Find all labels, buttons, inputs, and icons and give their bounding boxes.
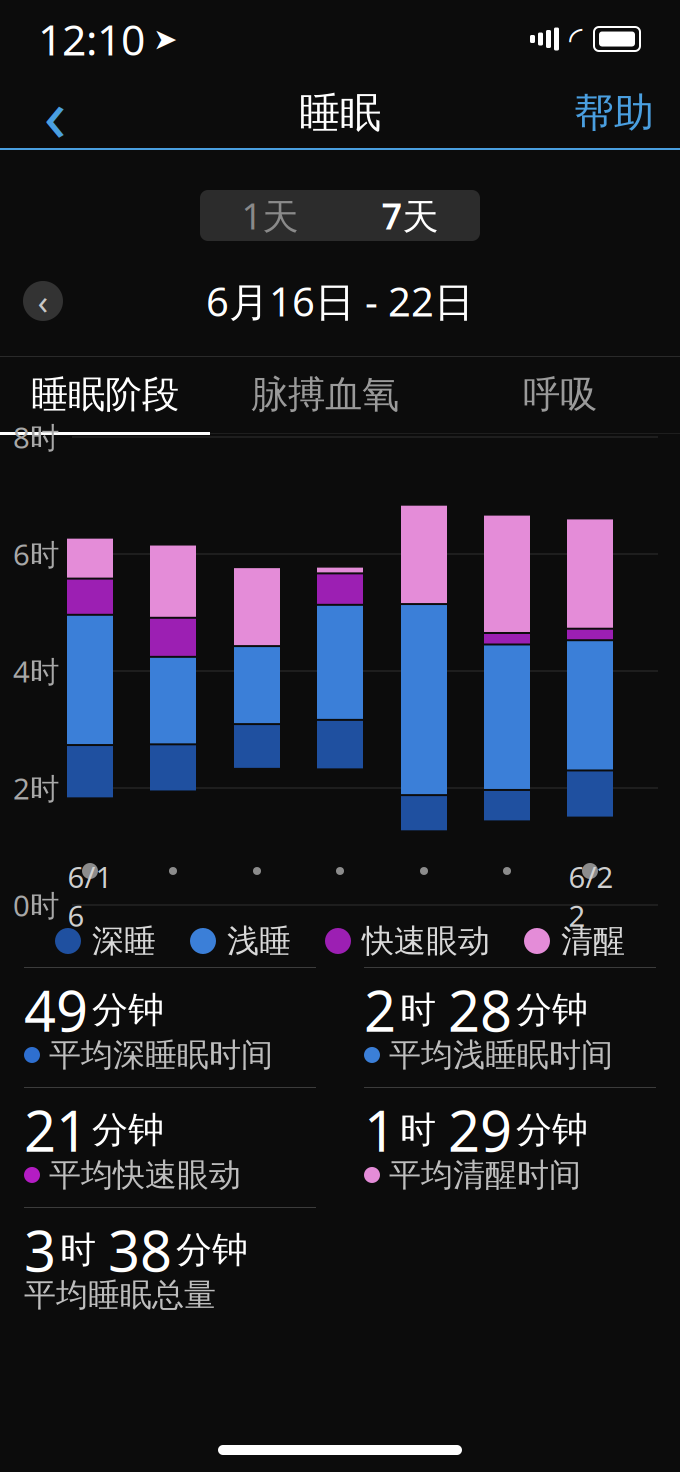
staticText: 清醒 [561, 921, 625, 961]
staticText: ‹ [43, 63, 66, 163]
button[interactable]: 帮助 [568, 78, 660, 148]
staticText: 6/16 [67, 857, 112, 935]
staticText: ‹ [37, 278, 48, 324]
staticText: 38 [108, 1213, 172, 1287]
staticText: 3 [24, 1213, 56, 1287]
button[interactable]: 7天 [340, 190, 480, 241]
staticText: 2时 [13, 768, 59, 807]
staticText: 呼吸 [523, 372, 597, 417]
staticText: 6月16日 - 22日 [206, 274, 474, 327]
staticText: ➤ [153, 22, 178, 56]
button[interactable]: 呼吸 [440, 357, 680, 432]
staticText: 分钟 [516, 1108, 588, 1152]
staticText: 49 [24, 973, 88, 1047]
staticText: 睡眠 [299, 88, 381, 138]
staticText: 1 [364, 1093, 396, 1167]
staticText: 7天 [381, 192, 438, 239]
staticText: 平均清醒时间 [389, 1155, 581, 1195]
button[interactable]: 脉搏血氧 [210, 357, 440, 432]
button[interactable]: 上一周 [23, 281, 63, 321]
staticText: 分钟 [92, 1108, 164, 1152]
staticText: 睡眠阶段 [31, 372, 179, 417]
staticText: 平均睡眠总量 [24, 1275, 216, 1315]
staticText: 4时 [13, 651, 59, 690]
staticText: 21 [24, 1093, 88, 1167]
staticText: 分钟 [516, 988, 588, 1032]
staticText: 6时 [13, 534, 59, 573]
button[interactable]: 1天 [200, 190, 340, 241]
staticText: 1天 [241, 192, 298, 239]
staticText: 0时 [13, 885, 59, 924]
staticText: 分钟 [92, 988, 164, 1032]
staticText: 快速眼动 [362, 921, 490, 961]
button[interactable]: 返回 [20, 78, 90, 148]
staticText: 2 [364, 973, 396, 1047]
staticText: ◜ [569, 19, 582, 59]
staticText: 帮助 [574, 88, 654, 137]
staticText: 时 [60, 1228, 96, 1272]
staticText: 时 [400, 988, 436, 1032]
staticText: 平均快速眼动 [49, 1155, 241, 1195]
staticText: 时 [400, 1108, 436, 1152]
button[interactable]: 睡眠阶段 [0, 357, 210, 432]
staticText: 深睡 [92, 921, 156, 961]
staticText: 6/22 [568, 857, 613, 935]
staticText: 脉搏血氧 [251, 372, 399, 417]
staticText: 分钟 [176, 1228, 248, 1272]
staticText: 28 [448, 973, 512, 1047]
staticText: 平均深睡眠时间 [49, 1035, 273, 1075]
staticText: 浅睡 [227, 921, 291, 961]
staticText: 8时 [13, 417, 59, 456]
staticText: 12:10 [38, 11, 145, 67]
staticText: 平均浅睡眠时间 [389, 1035, 613, 1075]
staticText: 29 [448, 1093, 512, 1167]
